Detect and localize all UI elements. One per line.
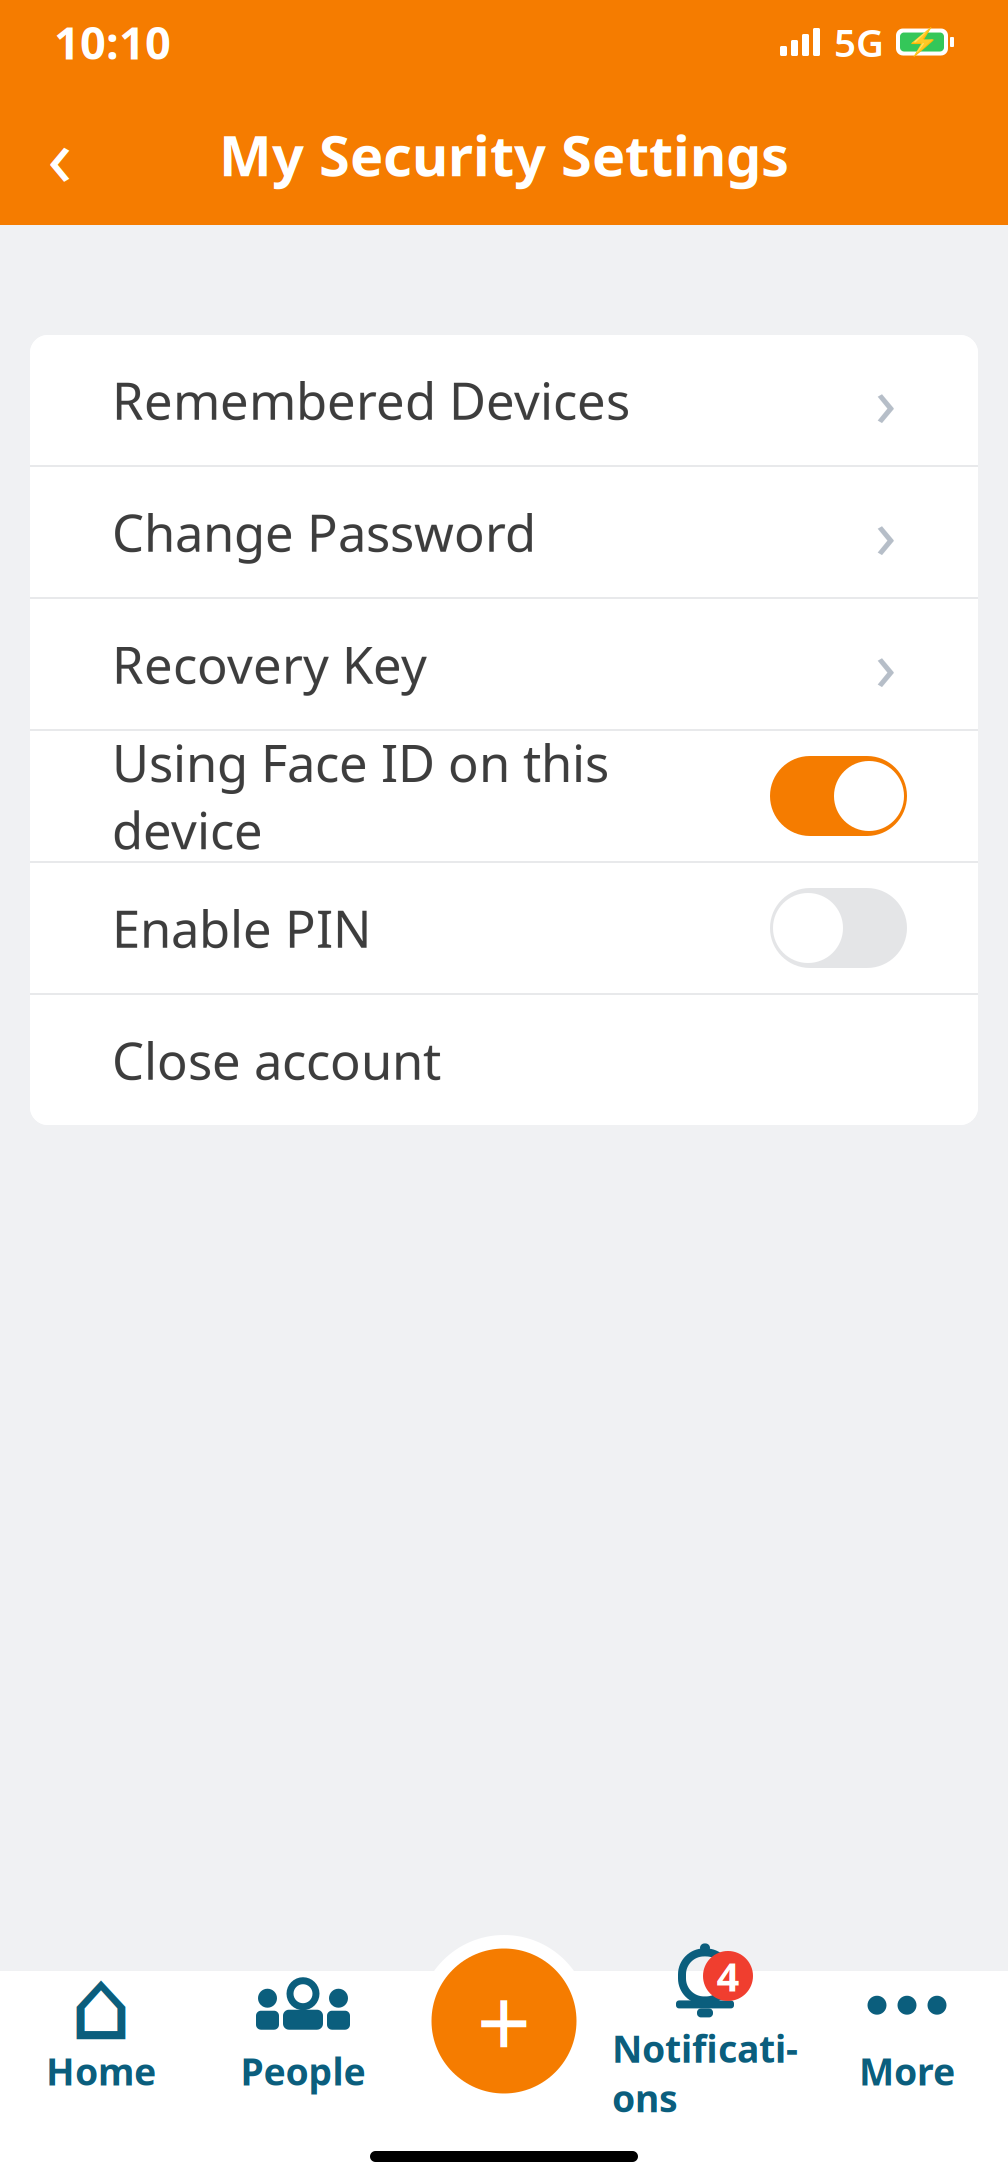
staticText: › bbox=[875, 354, 896, 446]
staticText: Enable PIN bbox=[112, 894, 372, 962]
staticText: Notifications bbox=[612, 2023, 798, 2123]
staticText: Change Password bbox=[112, 498, 536, 566]
button[interactable]: People bbox=[202, 1971, 404, 2101]
staticText: › bbox=[875, 486, 896, 578]
staticText: Using Face ID on this device bbox=[112, 729, 609, 863]
staticText: People bbox=[240, 2046, 365, 2096]
staticText: Remembered Devices bbox=[112, 366, 630, 434]
staticText: More bbox=[859, 2046, 955, 2096]
button[interactable]: Change Password bbox=[30, 467, 978, 597]
staticText: Close account bbox=[112, 1026, 441, 1094]
button[interactable]: Create bbox=[418, 1935, 590, 2107]
staticText: ⚡ bbox=[905, 27, 938, 57]
staticText: Home bbox=[46, 2046, 156, 2096]
button[interactable]: 4 bbox=[604, 1971, 806, 2101]
button[interactable]: Remembered Devices bbox=[30, 335, 978, 465]
button[interactable]: More bbox=[806, 1971, 1008, 2101]
button[interactable]: Recovery Key bbox=[30, 599, 978, 729]
staticText: 4 bbox=[716, 1949, 739, 2002]
staticText: › bbox=[875, 618, 896, 710]
button[interactable]: Back bbox=[14, 108, 106, 200]
button[interactable]: Using Face ID on this device bbox=[30, 731, 978, 861]
button[interactable]: ⌂ bbox=[0, 1971, 202, 2101]
staticText: Recovery Key bbox=[112, 630, 427, 698]
staticText: 10:10 bbox=[54, 12, 171, 72]
staticText: 5G bbox=[834, 16, 884, 68]
button[interactable]: Enable PIN bbox=[30, 863, 978, 993]
button[interactable]: Close account bbox=[30, 995, 978, 1125]
staticText: ‹ bbox=[47, 100, 73, 209]
staticText: My Security Settings bbox=[219, 117, 789, 192]
staticText: ⌂ bbox=[69, 1949, 132, 2061]
staticText: + bbox=[476, 1957, 531, 2085]
